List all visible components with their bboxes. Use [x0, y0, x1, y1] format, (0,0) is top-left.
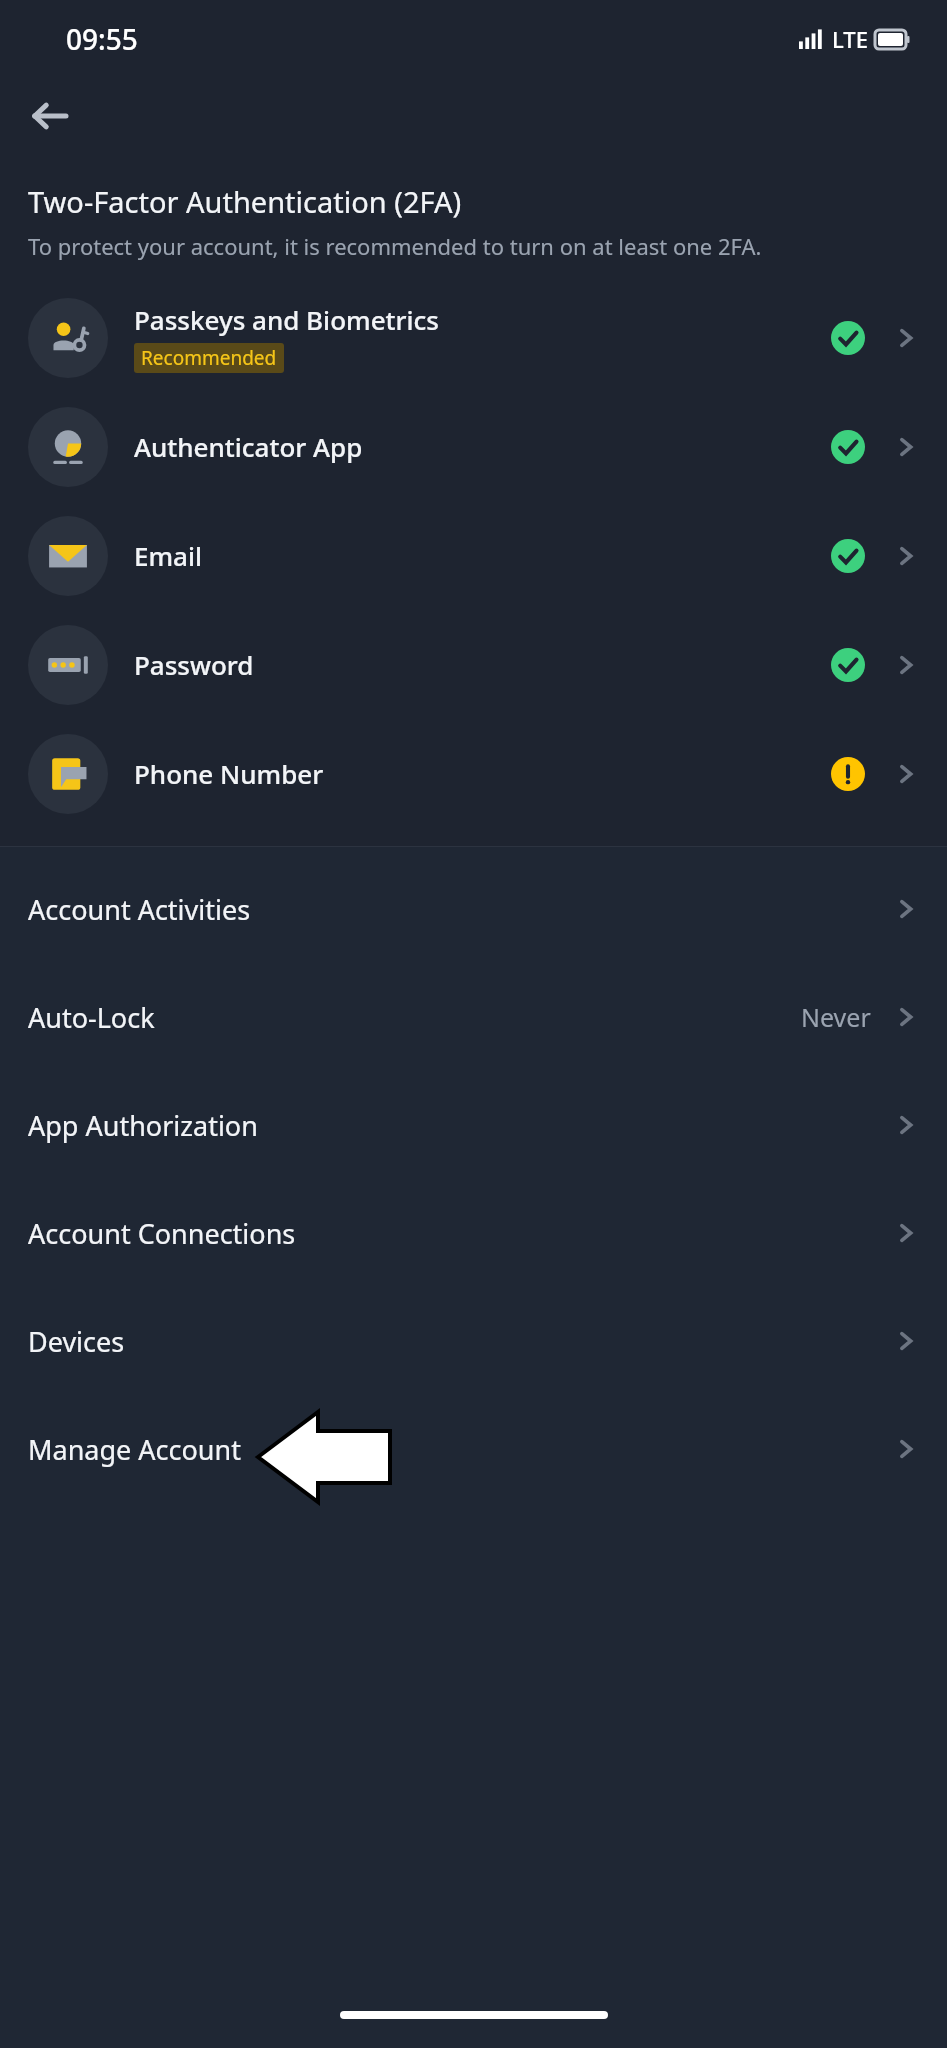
- staticText: Authenticator App: [134, 429, 363, 464]
- button[interactable]: Email: [0, 501, 947, 610]
- staticText: 09:55: [66, 20, 138, 58]
- button[interactable]: Password: [0, 610, 947, 719]
- button[interactable]: Account Activities: [0, 855, 947, 963]
- staticText: Never: [801, 1000, 871, 1034]
- button[interactable]: Phone Number: [0, 719, 947, 828]
- staticText: Passkeys and Biometrics: [134, 302, 439, 337]
- staticText: Auto-Lock: [28, 999, 801, 1036]
- staticText: Manage Account: [28, 1431, 893, 1468]
- staticText: App Authorization: [28, 1107, 893, 1144]
- button[interactable]: Devices: [0, 1287, 947, 1395]
- staticText: Devices: [28, 1323, 893, 1360]
- staticText: Recommended: [141, 345, 277, 371]
- staticText: Password: [134, 647, 254, 682]
- button[interactable]: App Authorization: [0, 1071, 947, 1179]
- staticText: Account Activities: [28, 891, 893, 928]
- button[interactable]: Authenticator App: [0, 392, 947, 501]
- button[interactable]: Account Connections: [0, 1179, 947, 1287]
- button[interactable]: Auto-Lock: [0, 963, 947, 1071]
- button[interactable]: Manage Account: [0, 1395, 947, 1503]
- button[interactable]: Passkeys and Biometrics: [0, 283, 947, 392]
- staticText: Account Connections: [28, 1215, 893, 1252]
- staticText: LTE: [832, 24, 868, 54]
- staticText: Phone Number: [134, 756, 324, 791]
- staticText: To protect your account, it is recommend…: [28, 231, 762, 261]
- button[interactable]: Back: [18, 85, 80, 147]
- staticText: Two-Factor Authentication (2FA): [28, 182, 462, 221]
- staticText: Email: [134, 538, 203, 573]
